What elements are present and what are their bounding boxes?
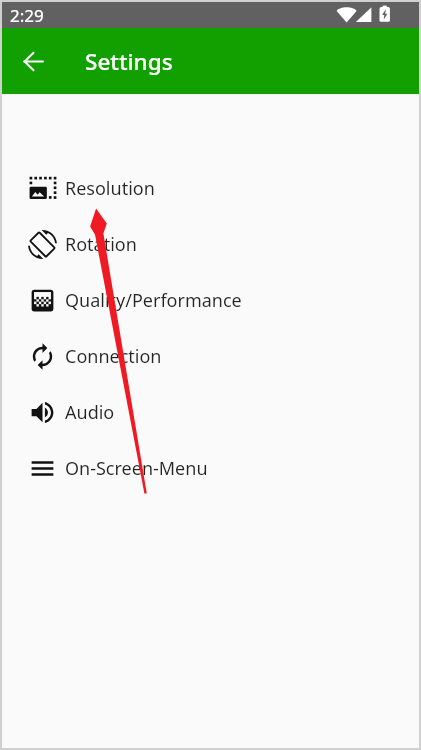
staticText: Audio [65,400,115,425]
button[interactable]: Resolution [2,160,419,216]
button[interactable]: Quality/Performance [2,272,419,328]
button[interactable]: On-Screen-Menu [2,440,419,496]
staticText: Connection [65,344,162,369]
button[interactable]: Rotation [2,216,419,272]
staticText: Resolution [65,176,155,201]
staticText: On-Screen-Menu [65,456,208,481]
staticText: Rotation [65,232,137,257]
staticText: 2:29 [10,4,44,27]
button[interactable]: Connection [2,328,419,384]
staticText: Quality/Performance [65,288,242,313]
button[interactable]: Navigate back [14,42,52,80]
staticText: Settings [85,46,173,77]
button[interactable]: Audio [2,384,419,440]
